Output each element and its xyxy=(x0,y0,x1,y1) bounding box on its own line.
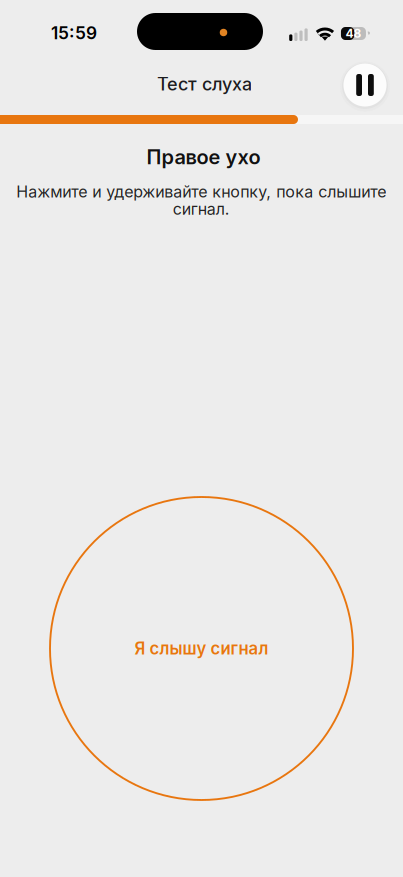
button[interactable]: Пауза xyxy=(339,59,391,111)
staticText: Я слышу сигнал xyxy=(134,638,268,659)
staticText: 15:59 xyxy=(51,22,97,43)
staticText: Правое ухо xyxy=(146,145,260,169)
staticText: Нажмите и удерживайте кнопку, пока слыши… xyxy=(16,182,386,219)
staticText: Тест слуха xyxy=(157,73,252,95)
staticText: 48 xyxy=(345,26,361,41)
button[interactable]: Я слышу сигнал xyxy=(50,497,353,800)
